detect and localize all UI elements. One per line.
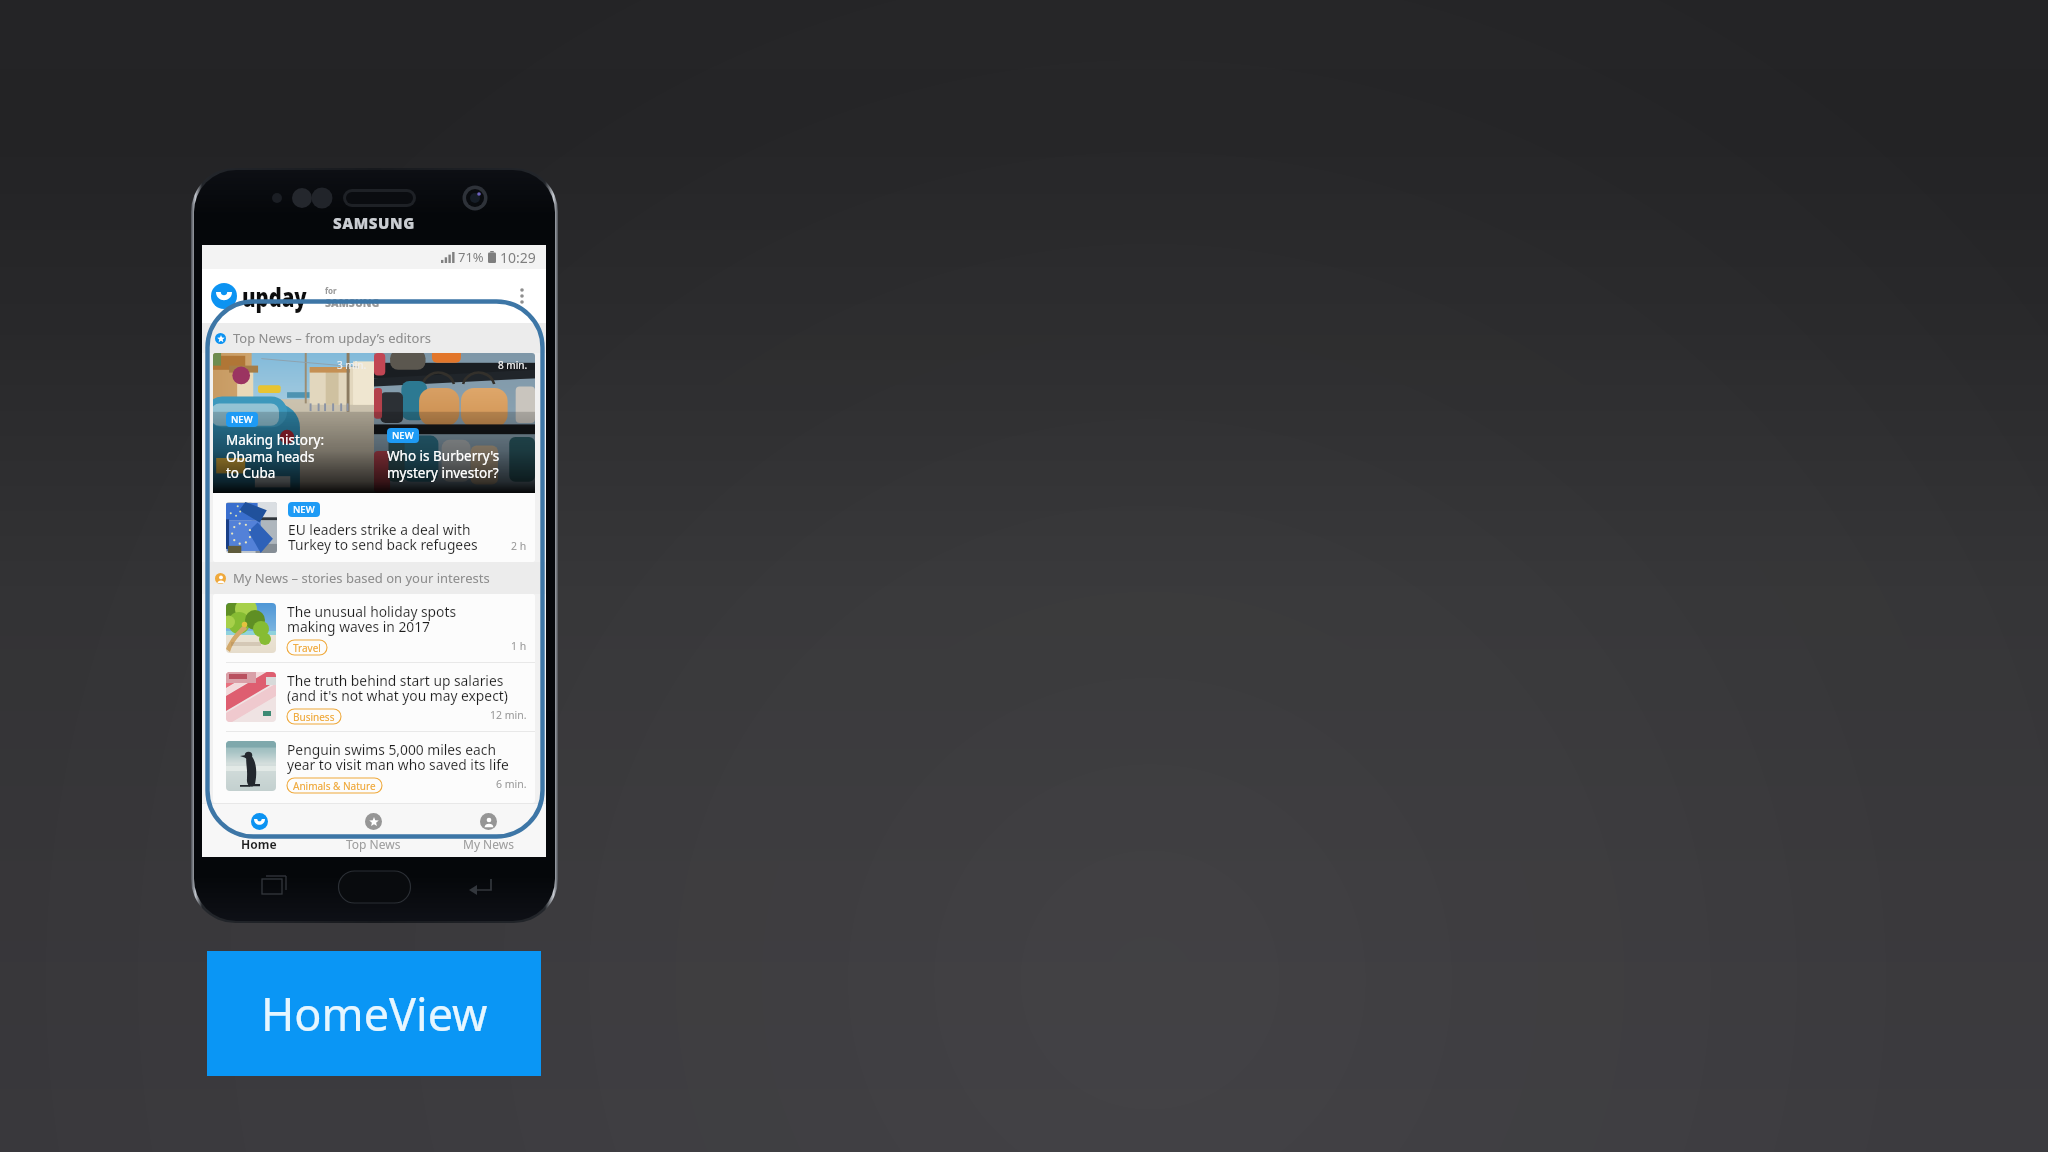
staticText: 8 min. (498, 358, 528, 372)
staticText: Making history: Obama heads to Cuba (226, 431, 325, 482)
button[interactable]: Top News – from upday’s editors (202, 323, 546, 353)
staticText: 3 min. (337, 358, 367, 372)
button[interactable]: Penguin swims 5,000 miles each year to v… (213, 732, 535, 800)
button[interactable]: 8 min. (374, 353, 535, 493)
staticText: EU leaders strike a deal with Turkey to … (288, 520, 478, 554)
button[interactable]: Top News (316, 804, 431, 857)
staticText: 71% (458, 248, 484, 266)
staticText: My News – stories based on your interest… (233, 569, 490, 587)
button[interactable]: The truth behind start up salaries (and … (213, 663, 535, 731)
staticText: NEW (392, 429, 414, 442)
staticText: NEW (231, 413, 253, 426)
staticText: The unusual holiday spots making waves i… (287, 602, 457, 636)
staticText: 10:29 (500, 248, 536, 267)
staticText: SAMSUNG (333, 213, 415, 233)
staticText: Who is Burberry's mystery investor? (387, 447, 500, 482)
staticText: Top News (346, 836, 401, 852)
button[interactable]: NEW (213, 493, 535, 562)
staticText: Business (293, 710, 335, 724)
staticText: 1 h (511, 639, 527, 653)
staticText: Home (241, 836, 277, 852)
staticText: Travel (293, 641, 321, 655)
staticText: HomeView (261, 983, 488, 1044)
staticText: Top News – from upday’s editors (233, 329, 431, 347)
staticText: NEW (293, 503, 315, 516)
staticText: The truth behind start up salaries (and … (287, 671, 508, 705)
button[interactable]: The unusual holiday spots making waves i… (213, 594, 535, 662)
staticText: My News (463, 836, 514, 852)
staticText: 12 min. (490, 708, 527, 722)
button[interactable]: HomeView (207, 951, 541, 1076)
staticText: for (325, 285, 337, 296)
button[interactable]: My News – stories based on your interest… (202, 562, 546, 594)
staticText: 2 h (511, 539, 527, 553)
button[interactable]: 3 min. (213, 353, 374, 493)
button[interactable]: More options (508, 282, 536, 310)
button[interactable]: Home (202, 804, 316, 857)
staticText: Penguin swims 5,000 miles each year to v… (287, 740, 509, 774)
staticText: SAMSUNG (325, 296, 380, 310)
staticText: 6 min. (496, 777, 527, 791)
button[interactable]: My News (431, 804, 546, 857)
staticText: Animals & Nature (293, 779, 376, 793)
staticText: upday (242, 279, 307, 314)
